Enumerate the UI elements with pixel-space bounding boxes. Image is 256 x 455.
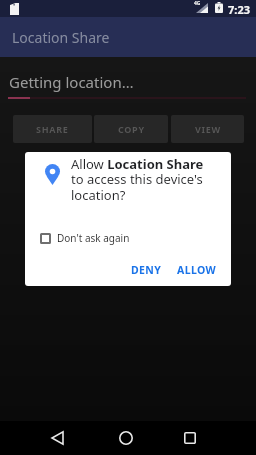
button[interactable]: DENY xyxy=(131,263,162,277)
staticText: 7:23 xyxy=(228,2,250,17)
button[interactable] xyxy=(45,421,69,455)
staticText: SHARE xyxy=(36,123,69,135)
button[interactable]: COPY xyxy=(94,115,168,143)
button[interactable] xyxy=(178,421,202,455)
staticText: 4G xyxy=(194,0,201,7)
staticText: VIEW xyxy=(195,123,221,135)
staticText: Getting location… xyxy=(9,72,134,92)
staticText: Don't ask again xyxy=(57,231,130,245)
button[interactable]: SHARE xyxy=(13,115,92,143)
staticText: Location Share xyxy=(12,28,110,47)
button[interactable]: ALLOW xyxy=(177,263,217,277)
button[interactable]: VIEW xyxy=(171,115,244,143)
staticText: Allow Location Share to access this devi… xyxy=(71,155,204,204)
button[interactable] xyxy=(114,421,138,455)
staticText: COPY xyxy=(118,123,145,135)
button[interactable]: Don't ask again xyxy=(40,231,130,245)
